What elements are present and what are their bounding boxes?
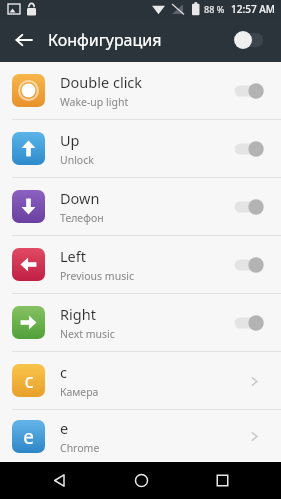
button[interactable]: e — [0, 410, 281, 462]
button[interactable]: Toggle Down — [229, 190, 269, 224]
staticText: Chrome — [60, 441, 100, 455]
staticText: Up — [60, 130, 80, 150]
button[interactable]: Toggle Up — [229, 132, 269, 166]
staticText: Телефон — [60, 211, 104, 225]
staticText: Unlock — [60, 153, 94, 167]
staticText: e — [60, 418, 69, 438]
button[interactable]: Toggle Right — [229, 306, 269, 340]
button[interactable]: Up — [0, 120, 281, 177]
button[interactable]: c — [0, 352, 281, 409]
button[interactable]: Back — [6, 22, 42, 58]
staticText: Previous music — [60, 269, 134, 283]
button[interactable]: Double click — [0, 62, 281, 119]
button[interactable]: Toggle Double click — [229, 74, 269, 108]
button[interactable]: Toggle Left — [229, 248, 269, 282]
staticText: 88 % — [204, 3, 225, 15]
staticText: c — [24, 368, 34, 394]
button[interactable]: Down — [0, 178, 281, 235]
staticText: Right — [60, 304, 96, 324]
button[interactable]: Right — [0, 294, 281, 351]
staticText: Down — [60, 188, 100, 208]
staticText: e — [23, 424, 34, 450]
button[interactable]: Recent apps — [200, 462, 244, 499]
button[interactable]: Enable all — [229, 25, 269, 55]
button[interactable]: Left — [0, 236, 281, 293]
staticText: Конфигурация — [48, 29, 162, 51]
staticText: Left — [60, 246, 86, 266]
button[interactable]: Back — [37, 462, 81, 499]
staticText: Double click — [60, 72, 143, 92]
staticText: c — [60, 362, 67, 382]
staticText: Next music — [60, 327, 115, 341]
button[interactable]: Home — [119, 462, 163, 499]
staticText: Wake-up light — [60, 95, 129, 109]
staticText: 12:57 AM — [231, 2, 275, 16]
staticText: Камера — [60, 385, 99, 399]
